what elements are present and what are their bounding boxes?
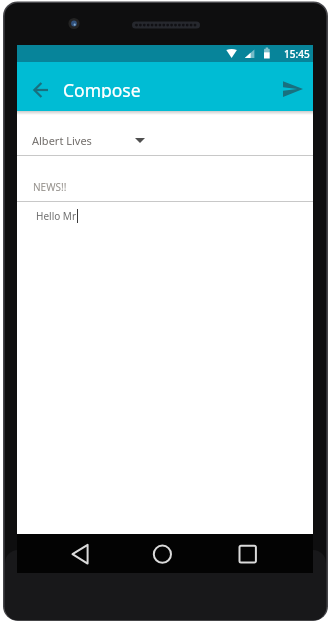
button[interactable] — [137, 534, 187, 573]
button[interactable]: Albert Lives — [25, 125, 155, 155]
button[interactable]: Hello Mr — [17, 202, 313, 242]
button[interactable] — [25, 74, 57, 106]
button[interactable]: NEWS!! — [17, 156, 313, 201]
button[interactable] — [55, 534, 105, 573]
staticText: 15:45 — [284, 47, 310, 61]
staticText: Hello Mr — [36, 209, 77, 223]
staticText: Albert Lives — [32, 133, 92, 148]
button[interactable] — [277, 73, 309, 105]
staticText: NEWS!! — [33, 180, 67, 194]
button[interactable] — [222, 534, 272, 573]
staticText: Compose — [63, 78, 141, 98]
